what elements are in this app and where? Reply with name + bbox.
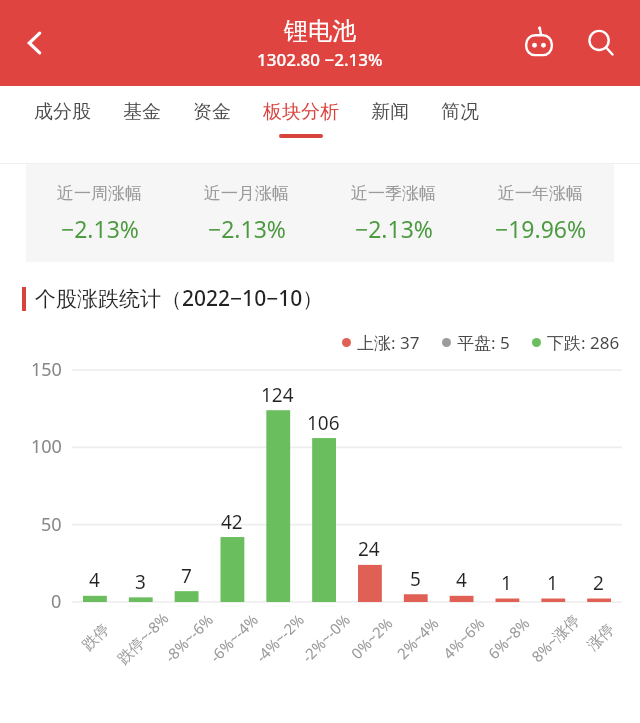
staticText: 6%~8%	[483, 613, 534, 663]
staticText: 4	[89, 567, 100, 593]
staticText: -2%~-0%	[297, 609, 354, 667]
staticText: 5	[410, 566, 421, 592]
staticText: 1302.80 −2.13%	[257, 48, 383, 71]
staticText: 42	[221, 509, 243, 535]
staticText: 近一月涨幅	[204, 183, 289, 204]
staticText: 150	[31, 357, 62, 382]
staticText: -6%~-4%	[205, 609, 262, 667]
staticText: 2	[593, 570, 604, 596]
staticText: 近一季涨幅	[351, 183, 436, 204]
button[interactable]: 资金	[177, 86, 247, 148]
staticText: 124	[261, 382, 294, 408]
staticText: -4%~-2%	[251, 609, 308, 667]
staticText: 个股涨跌统计（2022−10−10）	[35, 284, 324, 313]
staticText: 4	[456, 567, 467, 593]
button[interactable]: 新闻	[355, 86, 425, 148]
staticText: 成分股	[34, 100, 91, 124]
staticText: −2.13%	[355, 213, 433, 244]
staticText: 0%~2%	[346, 613, 397, 663]
staticText: −2.13%	[208, 213, 286, 244]
staticText: 跌停	[79, 620, 113, 655]
staticText: 平盘: 5	[457, 331, 510, 354]
staticText: -8%~-6%	[160, 609, 217, 667]
staticText: 0	[51, 589, 62, 614]
staticText: 涨停	[584, 620, 618, 655]
staticText: 基金	[123, 100, 161, 124]
staticText: 3	[135, 569, 146, 595]
staticText: −19.96%	[495, 213, 587, 244]
staticText: 1	[501, 570, 512, 596]
staticText: 锂电池	[284, 16, 356, 46]
staticText: 新闻	[371, 100, 409, 124]
staticText: 8%~涨停	[527, 610, 583, 666]
staticText: 24	[358, 536, 380, 562]
staticText: 2%~4%	[392, 613, 443, 663]
button[interactable]: Search	[576, 18, 626, 68]
staticText: 板块分析	[263, 100, 339, 124]
staticText: 100	[31, 434, 62, 459]
staticText: 近一周涨幅	[57, 183, 142, 204]
button[interactable]: 简况	[425, 86, 495, 148]
staticText: 上涨: 37	[357, 331, 420, 354]
staticText: 1	[547, 570, 558, 596]
button[interactable]: 成分股	[18, 86, 107, 148]
button[interactable]: 基金	[107, 86, 177, 148]
staticText: 近一年涨幅	[498, 183, 583, 204]
staticText: 资金	[193, 100, 231, 124]
staticText: 跌停~-8%	[112, 608, 172, 668]
staticText: −2.13%	[61, 213, 139, 244]
staticText: 106	[307, 410, 340, 436]
button[interactable]: 近一周涨幅	[26, 164, 614, 262]
staticText: 简况	[441, 100, 479, 124]
staticText: 4%~6%	[438, 613, 489, 663]
staticText: 7	[181, 563, 192, 589]
button[interactable]: Back	[8, 16, 62, 70]
staticText: 50	[41, 512, 62, 537]
button[interactable]: Assistant	[514, 18, 564, 68]
staticText: 下跌: 286	[547, 331, 620, 354]
button[interactable]: 板块分析	[247, 86, 355, 152]
